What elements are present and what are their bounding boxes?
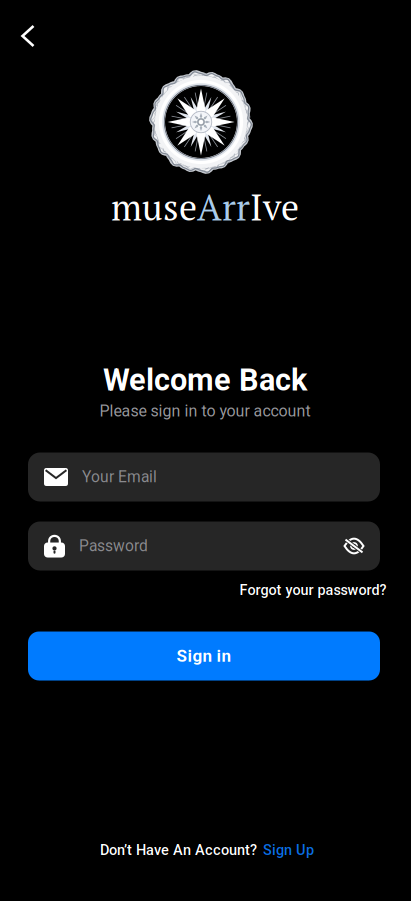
button[interactable]: Back xyxy=(6,14,50,58)
staticText: Arr xyxy=(197,183,250,231)
staticText: Ive xyxy=(250,183,299,231)
staticText: Forgot your password? xyxy=(239,582,386,598)
staticText: Sign Up xyxy=(263,841,314,858)
staticText: Welcome Back xyxy=(103,362,307,398)
button[interactable]: Sign Up xyxy=(263,841,314,858)
button[interactable]: Sign in xyxy=(28,631,380,680)
staticText: Sign in xyxy=(176,646,231,666)
button[interactable]: Forgot your password? xyxy=(239,576,386,604)
staticText: Please sign in to your account xyxy=(99,402,310,420)
staticText: muse xyxy=(111,183,197,231)
button[interactable]: Show password xyxy=(338,530,370,562)
staticText: Your Email xyxy=(82,468,157,486)
staticText: Password xyxy=(79,537,148,555)
staticText: Don’t Have An Account? xyxy=(100,841,257,858)
